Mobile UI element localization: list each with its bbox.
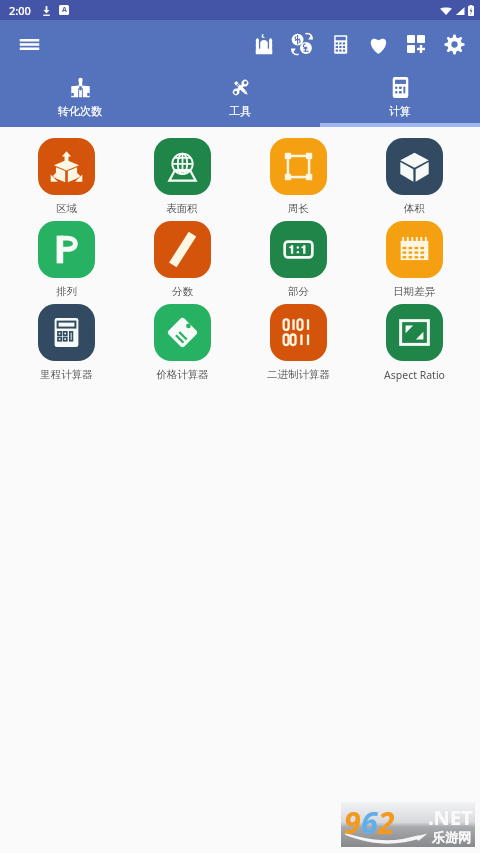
staticText: 价格计算器 <box>156 368 209 381</box>
button[interactable]: 转化次数 <box>0 67 160 127</box>
button[interactable]: 周长 <box>240 138 356 215</box>
button[interactable]: All apps <box>397 22 435 66</box>
button[interactable]: 体积 <box>356 138 472 215</box>
button[interactable]: 里程计算器 <box>8 304 124 381</box>
button[interactable]: 二进制计算器 <box>240 304 356 381</box>
button[interactable]: Settings <box>435 22 473 66</box>
staticText: 工具 <box>229 104 251 118</box>
button[interactable]: Aspect Ratio <box>356 304 472 382</box>
button[interactable]: Open navigation menu <box>11 26 47 62</box>
button[interactable]: 表面积 <box>124 138 240 215</box>
staticText: Aspect Ratio <box>384 368 445 382</box>
button[interactable]: 日期差异 <box>356 221 472 298</box>
staticText: 2 <box>378 802 395 843</box>
staticText: 乐游网 <box>432 829 471 845</box>
staticText: 区域 <box>56 202 77 215</box>
staticText: 2:00 <box>9 3 31 18</box>
staticText: 二进制计算器 <box>267 368 330 381</box>
staticText: 表面积 <box>166 202 198 215</box>
staticText: 转化次数 <box>58 104 102 118</box>
staticText: 9 <box>344 802 361 843</box>
staticText: 周长 <box>288 202 309 215</box>
staticText: .NET <box>428 804 473 831</box>
button[interactable]: 区域 <box>8 138 124 215</box>
staticText: 6 <box>361 802 378 843</box>
staticText: 排列 <box>56 285 77 298</box>
button[interactable]: 工具 <box>160 67 320 127</box>
staticText: A <box>62 5 67 15</box>
button[interactable]: Currency converter <box>283 22 321 66</box>
staticText: 部分 <box>288 285 309 298</box>
button[interactable]: 排列 <box>8 221 124 298</box>
button[interactable]: 价格计算器 <box>124 304 240 381</box>
button[interactable]: Favourites <box>359 22 397 66</box>
button[interactable]: Calculator device <box>321 22 359 66</box>
staticText: 体积 <box>404 202 425 215</box>
staticText: 里程计算器 <box>40 368 93 381</box>
button[interactable]: 分数 <box>124 221 240 298</box>
button[interactable]: Mosque prayer times <box>245 22 283 66</box>
staticText: 分数 <box>172 285 193 298</box>
staticText: 计算 <box>389 104 411 118</box>
staticText: 日期差异 <box>393 285 435 298</box>
button[interactable]: 部分 <box>240 221 356 298</box>
button[interactable]: 计算 <box>320 67 480 127</box>
